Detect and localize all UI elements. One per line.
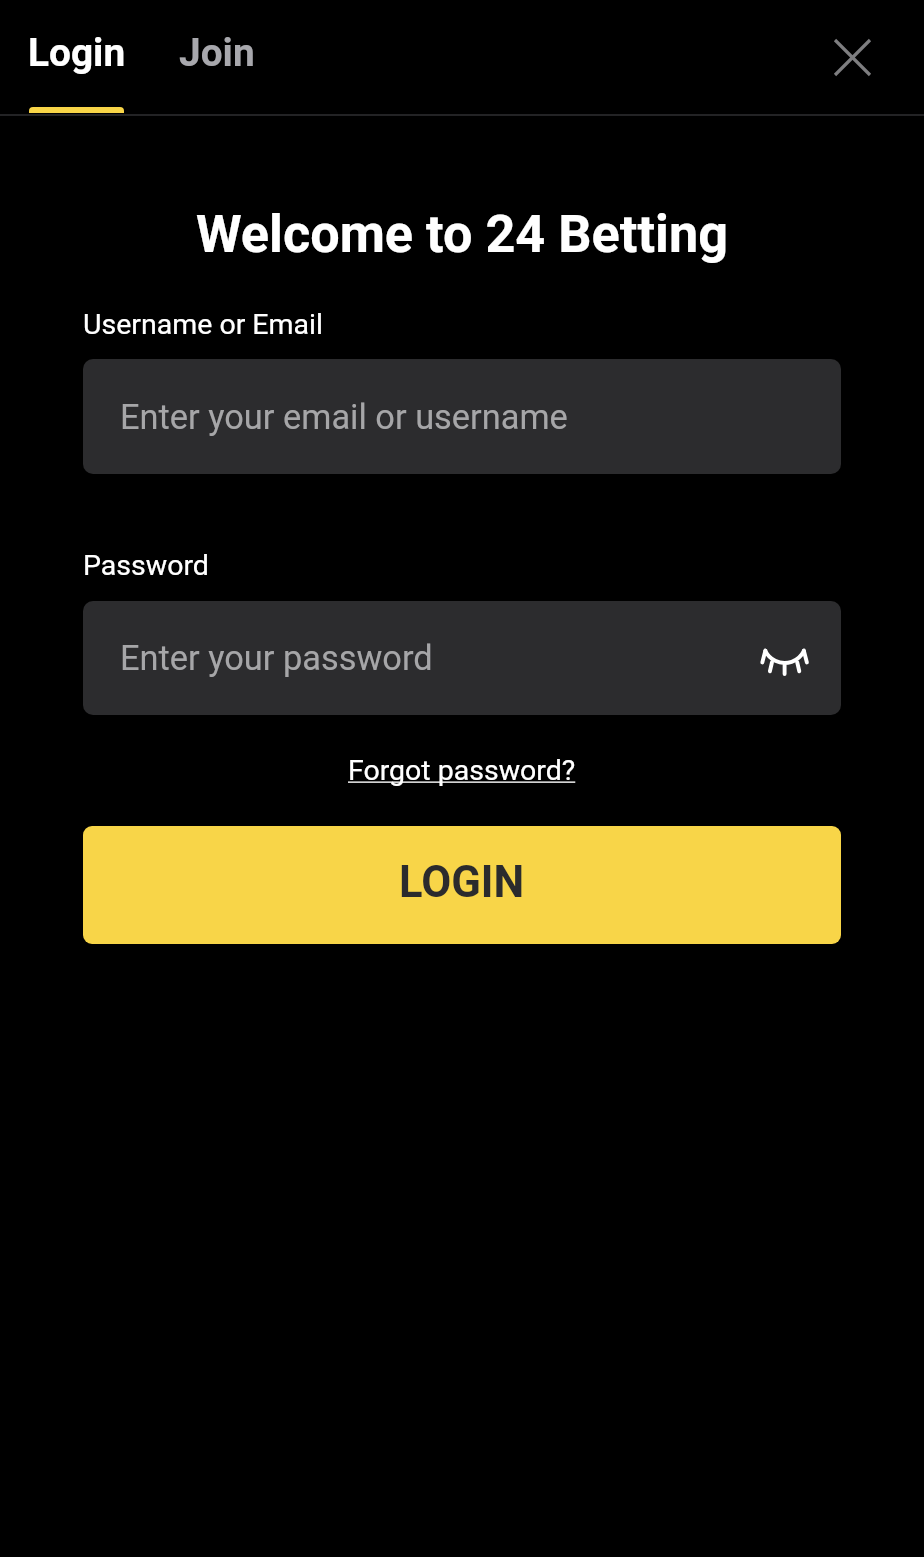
staticText: Join: [179, 30, 255, 75]
button[interactable]: Enter your password: [83, 601, 841, 715]
staticText: Enter your email or username: [120, 397, 568, 437]
staticText: Enter your password: [120, 638, 433, 678]
staticText: Login: [28, 30, 126, 75]
staticText: Password: [83, 549, 209, 582]
staticText: LOGIN: [399, 857, 525, 908]
button[interactable]: Enter your email or username: [83, 359, 841, 474]
button[interactable]: Join: [152, 0, 300, 114]
button[interactable]: Show password: [727, 601, 841, 715]
button[interactable]: LOGIN: [83, 826, 841, 944]
staticText: Welcome to 24 Betting: [196, 204, 728, 265]
button[interactable]: Forgot password?: [348, 754, 576, 787]
button[interactable]: Login: [0, 0, 152, 114]
staticText: Username or Email: [83, 308, 323, 341]
button[interactable]: Close: [795, 0, 909, 114]
